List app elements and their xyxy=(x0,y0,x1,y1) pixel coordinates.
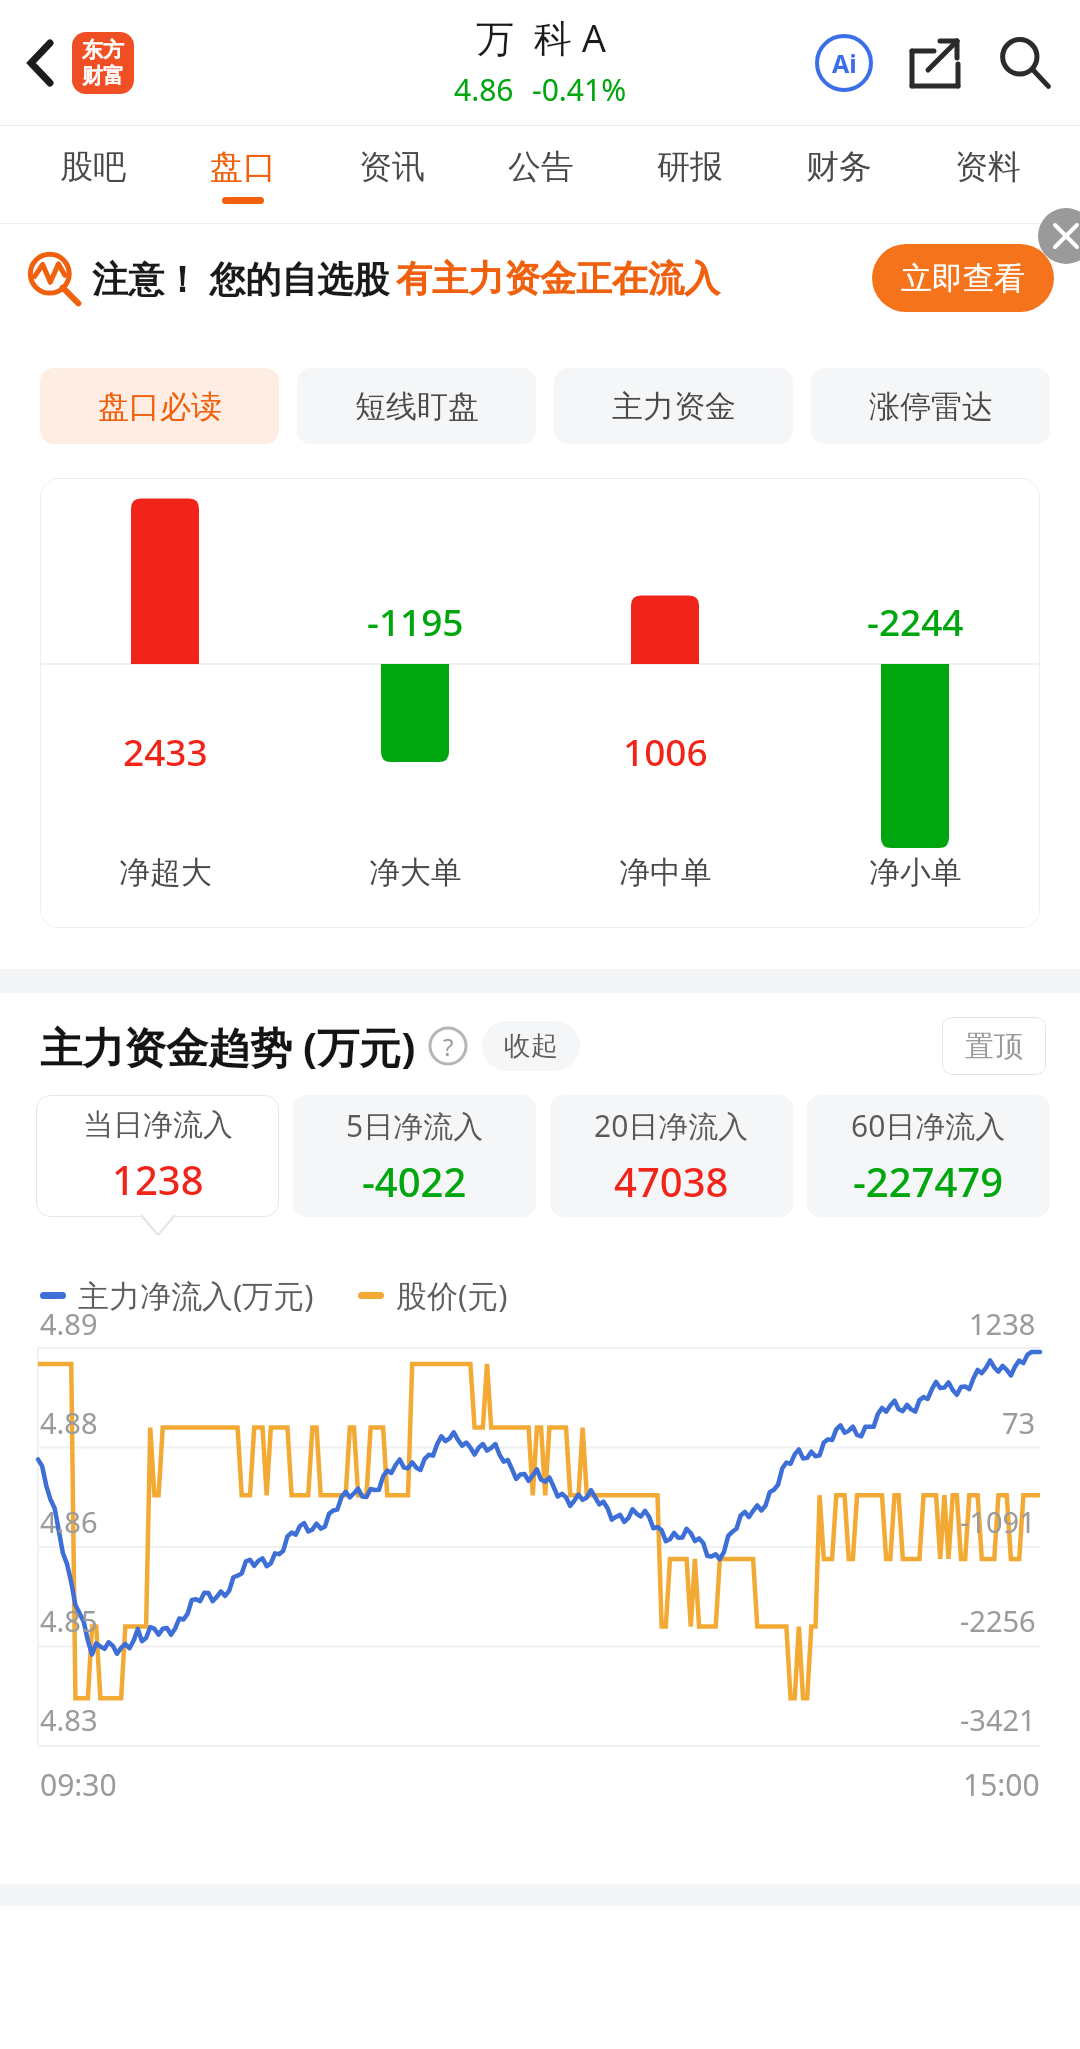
staticText: 净超大 xyxy=(119,853,212,892)
staticText: 主力资金趋势 (万元) xyxy=(40,1018,416,1075)
staticText: 47038 xyxy=(614,1154,729,1208)
button[interactable]: 公告 xyxy=(466,126,615,223)
staticText: -227479 xyxy=(853,1154,1004,1208)
button[interactable]: 2433 xyxy=(40,478,1040,928)
staticText: 当日净流入 xyxy=(83,1106,233,1144)
button[interactable]: 资讯 xyxy=(317,126,466,223)
button[interactable]: 5日净流入 xyxy=(293,1095,536,1217)
staticText: 4.89 xyxy=(40,1304,98,1343)
button[interactable]: AI assistant xyxy=(810,29,878,97)
staticText: 财富 xyxy=(82,63,124,89)
staticText: 公告 xyxy=(508,146,574,188)
staticText: 15:00 xyxy=(963,1764,1040,1805)
button[interactable]: 资料 xyxy=(913,126,1062,223)
staticText: -2256 xyxy=(960,1601,1036,1640)
staticText: -2244 xyxy=(867,596,964,646)
button[interactable]: 置顶 xyxy=(942,1017,1046,1075)
staticText: 股价(元) xyxy=(396,1274,508,1316)
staticText: 4.86 xyxy=(40,1502,98,1541)
staticText: 20日净流入 xyxy=(594,1105,749,1146)
staticText: ? xyxy=(443,1030,454,1063)
staticText: 置顶 xyxy=(965,1028,1023,1065)
button[interactable]: 财务 xyxy=(764,126,913,223)
staticText: 东方 xyxy=(82,37,124,63)
staticText: 盘口 xyxy=(210,146,276,188)
button[interactable]: Close xyxy=(1038,208,1080,264)
button[interactable]: East Money xyxy=(72,32,134,94)
staticText: 涨停雷达 xyxy=(869,387,993,426)
button[interactable]: 收起 xyxy=(504,1021,558,1071)
staticText: -1091 xyxy=(960,1502,1036,1541)
staticText: 2433 xyxy=(123,726,208,776)
button[interactable]: 当日净流入 xyxy=(36,1095,279,1217)
staticText: -3421 xyxy=(960,1700,1036,1739)
button[interactable]: 盘口 xyxy=(168,126,317,223)
button[interactable]: 主力资金 xyxy=(554,368,793,444)
button[interactable]: 注意！ 您的自选股 xyxy=(26,224,1054,332)
staticText: 有主力资金正在流入 xyxy=(396,256,720,301)
staticText: 立即查看 xyxy=(901,259,1025,298)
staticText: 09:30 xyxy=(40,1764,117,1805)
staticText: 4.83 xyxy=(40,1700,98,1739)
staticText: 主力净流入(万元) xyxy=(78,1274,314,1316)
staticText: 4.85 xyxy=(40,1601,98,1640)
button[interactable]: 股吧 xyxy=(18,126,168,223)
staticText: 资讯 xyxy=(359,146,425,188)
staticText: 净中单 xyxy=(619,853,712,892)
button[interactable]: 盘口必读 xyxy=(40,368,279,444)
button[interactable]: 研报 xyxy=(615,126,764,223)
button[interactable]: Back xyxy=(6,29,74,97)
staticText: -0.41% xyxy=(532,69,627,110)
staticText: 收起 xyxy=(504,1029,558,1063)
staticText: 盘口必读 xyxy=(98,387,222,426)
staticText: 万 科 A xyxy=(476,11,606,63)
button[interactable]: Help xyxy=(428,1026,468,1066)
staticText: 资料 xyxy=(955,146,1021,188)
button[interactable]: 短线盯盘 xyxy=(297,368,536,444)
button[interactable]: 涨停雷达 xyxy=(811,368,1050,444)
staticText: 5日净流入 xyxy=(346,1105,484,1146)
staticText: 研报 xyxy=(657,146,723,188)
staticText: -1195 xyxy=(367,596,464,646)
button[interactable]: Search xyxy=(992,30,1058,96)
staticText: 60日净流入 xyxy=(851,1105,1006,1146)
staticText: 净小单 xyxy=(869,853,962,892)
staticText: 短线盯盘 xyxy=(355,387,479,426)
staticText: -4022 xyxy=(362,1154,467,1208)
staticText: 1238 xyxy=(112,1152,204,1206)
staticText: 注意！ 您的自选股 xyxy=(92,254,390,303)
button[interactable]: 20日净流入 xyxy=(550,1095,793,1217)
staticText: 4.86 xyxy=(454,69,514,110)
button[interactable]: Share xyxy=(902,30,968,96)
staticText: 财务 xyxy=(806,146,872,188)
staticText: 1006 xyxy=(623,726,708,776)
staticText: 股吧 xyxy=(60,146,126,188)
staticText: 1238 xyxy=(969,1304,1036,1343)
staticText: 净大单 xyxy=(369,853,462,892)
button[interactable]: 立即查看 xyxy=(872,244,1054,312)
staticText: 73 xyxy=(1002,1403,1036,1442)
button[interactable]: 60日净流入 xyxy=(807,1095,1050,1217)
staticText: Ai xyxy=(832,46,857,80)
staticText: 4.88 xyxy=(40,1403,98,1442)
staticText: 主力资金 xyxy=(612,387,736,426)
